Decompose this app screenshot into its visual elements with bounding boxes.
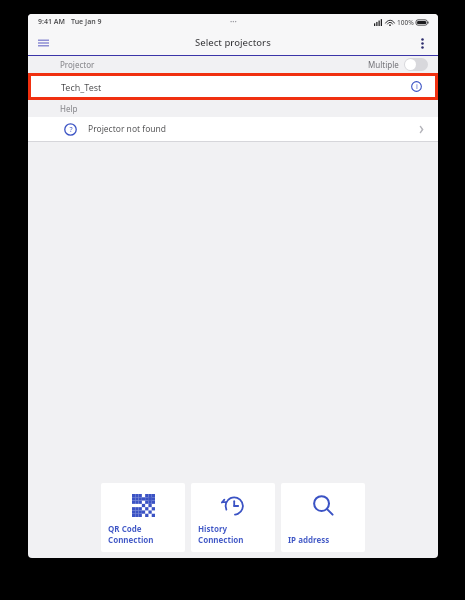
- staticText: Multiple: [368, 59, 399, 70]
- staticText: ?: [69, 125, 73, 135]
- button[interactable]: Tech_Test: [31, 76, 435, 97]
- staticText: Projector: [60, 59, 95, 70]
- staticText: •••: [230, 18, 237, 26]
- button[interactable]: QR Code: [101, 483, 185, 552]
- button[interactable]: More options: [411, 32, 433, 54]
- button[interactable]: Projector info: [409, 79, 424, 94]
- staticText: Connection: [198, 534, 244, 545]
- staticText: Help: [60, 103, 78, 114]
- button[interactable]: Multiple: [368, 58, 428, 71]
- staticText: Projector not found: [88, 123, 167, 135]
- staticText: i: [416, 82, 418, 92]
- staticText: History: [198, 523, 228, 534]
- staticText: Tech_Test: [61, 81, 102, 93]
- staticText: 9:41 AM: [38, 17, 65, 27]
- staticText: QR Code: [108, 523, 142, 534]
- staticText: 100%: [397, 18, 414, 27]
- staticText: IP address: [288, 534, 330, 545]
- staticText: Select projectors: [195, 36, 271, 49]
- button[interactable]: IP address: [281, 483, 365, 552]
- staticText: Connection: [108, 534, 154, 545]
- button[interactable]: Menu: [32, 32, 54, 54]
- staticText: Tue Jan 9: [71, 17, 102, 27]
- button[interactable]: History: [191, 483, 275, 552]
- button[interactable]: ?: [28, 117, 438, 141]
